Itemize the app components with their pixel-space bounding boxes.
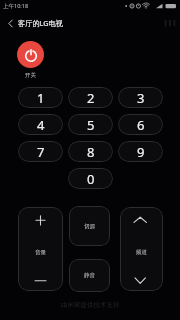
button[interactable]: 1 bbox=[18, 87, 63, 108]
button[interactable]: 8 bbox=[68, 141, 113, 162]
staticText: 上午10:18 bbox=[3, 2, 29, 10]
staticText: 3 bbox=[137, 89, 145, 107]
staticText: 由米家提供技术支持 bbox=[61, 301, 120, 309]
button[interactable]: 4 bbox=[18, 114, 63, 135]
button[interactable]: 切源 bbox=[69, 206, 110, 246]
staticText: 切源 bbox=[84, 223, 96, 230]
staticText: 2 bbox=[87, 89, 95, 107]
button[interactable]: 2 bbox=[68, 87, 113, 108]
staticText: 5 bbox=[87, 116, 95, 134]
staticText: 音量 bbox=[35, 249, 47, 256]
button[interactable]: Channel up bbox=[120, 207, 163, 247]
button[interactable]: 9 bbox=[118, 141, 163, 162]
button[interactable]: Power bbox=[17, 41, 44, 68]
staticText: 6 bbox=[137, 116, 145, 134]
button[interactable]: 7 bbox=[18, 141, 63, 162]
staticText: 4 bbox=[37, 116, 45, 134]
button[interactable]: 0 bbox=[68, 168, 113, 189]
staticText: 客厅的LG电视 bbox=[18, 18, 63, 28]
staticText: 8 bbox=[87, 143, 95, 161]
staticText: 7 bbox=[37, 143, 45, 161]
button[interactable]: 3 bbox=[118, 87, 163, 108]
staticText: 1 bbox=[37, 89, 45, 107]
button[interactable]: 静音 bbox=[69, 259, 110, 292]
button[interactable]: Volume up bbox=[18, 207, 63, 247]
staticText: 频道 bbox=[136, 249, 148, 256]
button[interactable]: 6 bbox=[118, 114, 163, 135]
button[interactable]: More options bbox=[160, 12, 180, 34]
staticText: 静音 bbox=[84, 272, 96, 279]
button[interactable]: 5 bbox=[68, 114, 113, 135]
button[interactable]: Channel down bbox=[120, 251, 163, 291]
staticText: 开关 bbox=[25, 72, 37, 79]
staticText: 0 bbox=[87, 170, 95, 188]
staticText: 9 bbox=[137, 143, 145, 161]
button[interactable]: Volume down bbox=[18, 251, 63, 291]
button[interactable]: Back bbox=[0, 12, 21, 34]
